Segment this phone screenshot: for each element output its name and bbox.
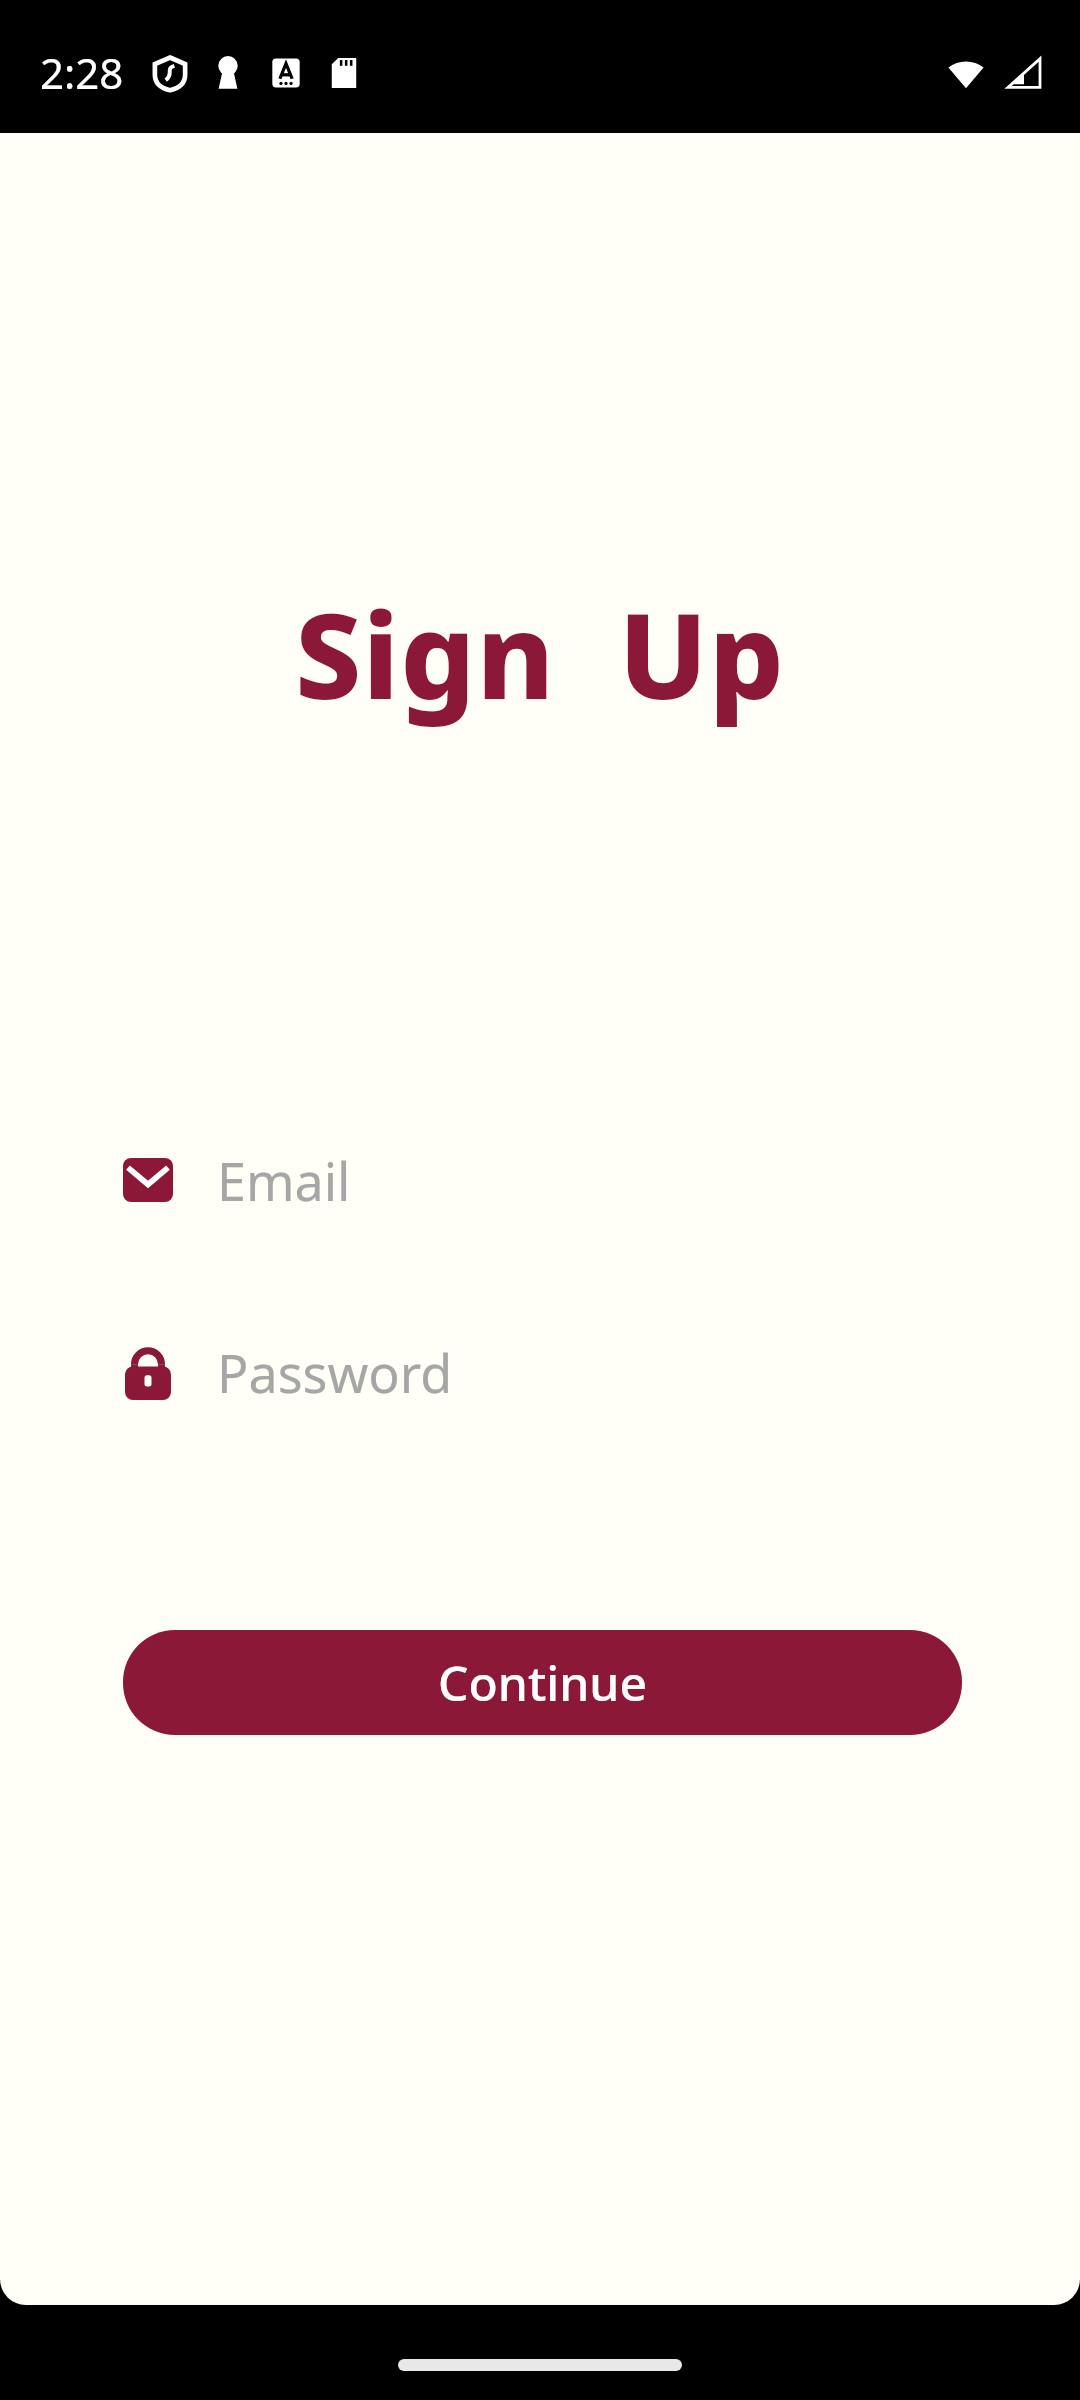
button[interactable]: Continue [123, 1630, 962, 1735]
other: Home gesture [398, 2359, 682, 2371]
staticText: Continue [438, 1650, 647, 1715]
staticText: Email [217, 1145, 351, 1216]
staticText: Sign Up [0, 573, 1080, 734]
staticText: Password [217, 1337, 453, 1408]
button[interactable]: Email [0, 1118, 1080, 1242]
staticText: 2:28 [40, 44, 124, 101]
button[interactable]: Password [0, 1310, 1080, 1434]
